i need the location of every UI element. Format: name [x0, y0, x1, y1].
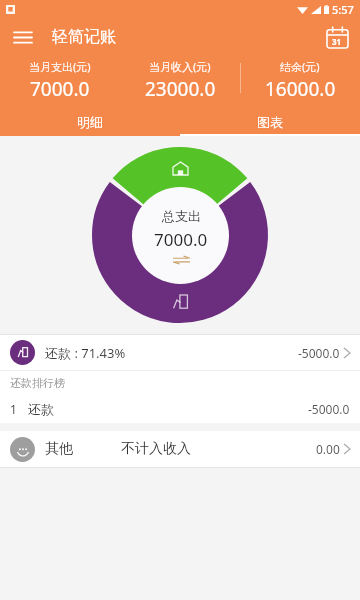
- staticText: 其他: [45, 440, 73, 458]
- staticText: 轻简记账: [52, 27, 116, 47]
- button[interactable]: 图表: [180, 107, 360, 136]
- staticText: 16000.0: [265, 76, 336, 102]
- staticText: 当月支出(元): [29, 59, 91, 74]
- staticText: 5:57: [332, 2, 354, 17]
- button[interactable]: Menu: [0, 18, 46, 56]
- staticText: 结余(元): [280, 59, 320, 74]
- staticText: -5000.0: [308, 401, 350, 417]
- staticText: 还款: [28, 401, 54, 417]
- button[interactable]: 还款 : 71.43%: [0, 335, 360, 370]
- staticText: 1: [10, 401, 17, 417]
- staticText: 不计入收入: [121, 440, 191, 458]
- staticText: 总支出: [162, 208, 201, 224]
- staticText: 7000.0: [154, 228, 208, 251]
- staticText: 明细: [77, 114, 103, 130]
- staticText: 图表: [257, 114, 283, 130]
- staticText: 23000.0: [145, 76, 216, 102]
- staticText: 还款 : 71.43%: [45, 344, 126, 362]
- button[interactable]: Calendar: [314, 18, 360, 56]
- staticText: 当月收入(元): [149, 59, 211, 74]
- staticText: 0.00: [316, 441, 340, 457]
- button[interactable]: 其他: [0, 431, 360, 467]
- staticText: 31: [332, 36, 342, 47]
- staticText: -5000.0: [298, 345, 340, 361]
- staticText: 还款排行榜: [10, 376, 65, 390]
- button[interactable]: 明细: [0, 107, 180, 136]
- staticText: 7000.0: [30, 76, 90, 102]
- button[interactable]: 1: [0, 395, 360, 423]
